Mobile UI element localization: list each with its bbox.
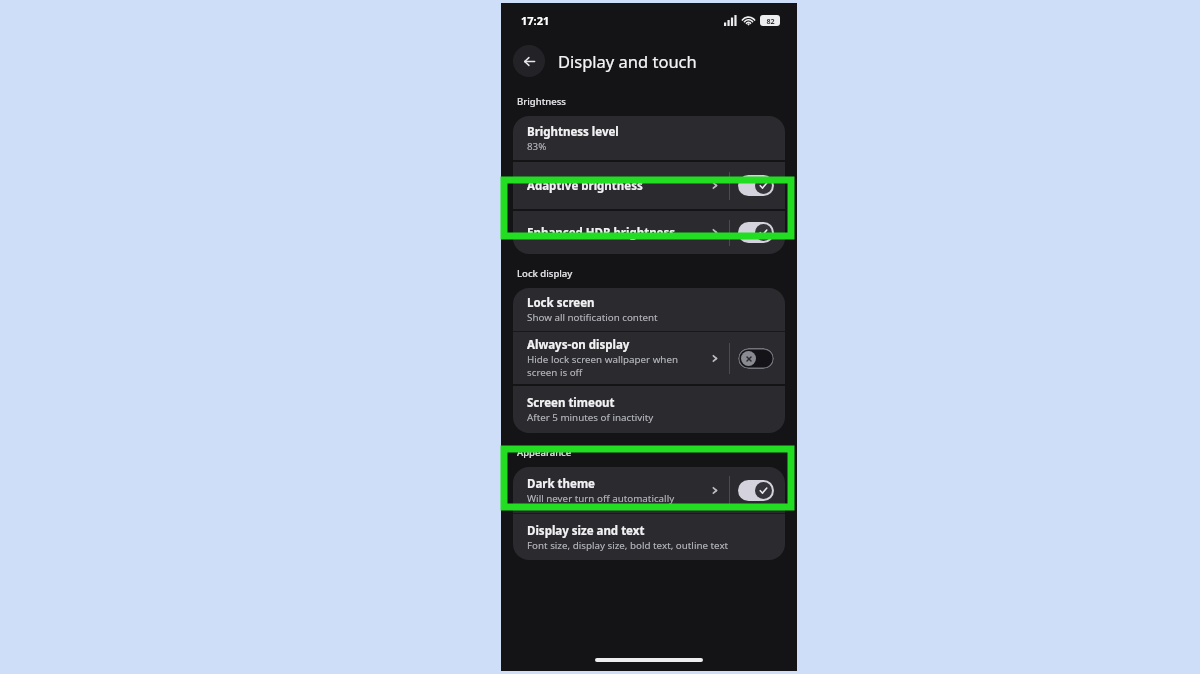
staticText: Hide lock screen wallpaper when screen i… <box>527 353 678 379</box>
button[interactable]: Switch on <box>738 222 774 243</box>
button[interactable]: Lock screen <box>513 288 785 331</box>
button[interactable]: Switch on <box>738 480 774 501</box>
staticText: Enhanced HDR brightness <box>527 225 676 241</box>
staticText: Font size, display size, bold text, outl… <box>527 539 729 552</box>
button[interactable]: Display size and text <box>513 514 785 560</box>
button[interactable]: Switch off <box>738 348 774 369</box>
button[interactable]: Switch on <box>738 175 774 196</box>
staticText: 82 <box>766 16 775 26</box>
staticText: Lock screen <box>527 295 595 311</box>
button[interactable]: Dark theme <box>513 467 785 513</box>
button[interactable]: Brightness level <box>513 116 785 160</box>
staticText: Display size and text <box>527 523 645 539</box>
staticText: Adaptive brightness <box>527 178 643 194</box>
staticText: 83% <box>527 140 547 153</box>
staticText: Lock display <box>517 267 573 280</box>
staticText: Appearance <box>517 446 572 459</box>
staticText: Brightness level <box>527 124 619 140</box>
staticText: After 5 minutes of inactivity <box>527 411 654 424</box>
staticText: Screen timeout <box>527 395 615 411</box>
staticText: Display and touch <box>558 50 697 72</box>
staticText: Dark theme <box>527 476 595 492</box>
button[interactable]: Enhanced HDR brightness <box>513 211 785 254</box>
staticText: Will never turn off automatically <box>527 492 675 505</box>
button[interactable]: Always-on display <box>513 332 785 384</box>
staticText: 17:21 <box>521 13 550 28</box>
button[interactable]: Adaptive brightness <box>513 162 785 209</box>
staticText: Brightness <box>517 95 566 108</box>
button[interactable]: Back <box>513 45 545 77</box>
staticText: Always-on display <box>527 337 630 353</box>
button[interactable]: Screen timeout <box>513 386 785 433</box>
staticText: Show all notification content <box>527 311 658 324</box>
